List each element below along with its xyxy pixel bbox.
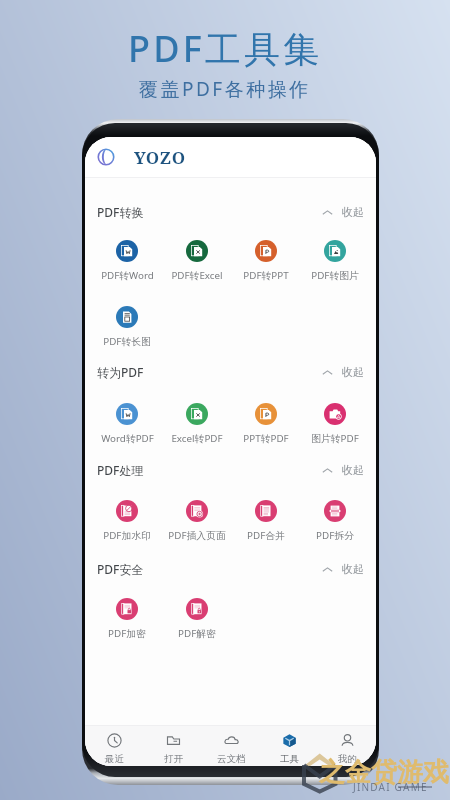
- button[interactable]: PDF转PPT: [231, 240, 300, 282]
- button[interactable]: Excel转PDF: [162, 403, 231, 445]
- button[interactable]: PDF拆分: [300, 500, 369, 542]
- staticText: PDF拆分: [316, 529, 354, 542]
- staticText: PDF解密: [178, 627, 216, 640]
- staticText: PDF插入页面: [168, 529, 226, 542]
- staticText: PDF转长图: [103, 335, 151, 348]
- button[interactable]: 收起: [320, 460, 366, 480]
- staticText: PDF转PPT: [243, 269, 289, 282]
- button[interactable]: PDF加水印: [92, 500, 162, 542]
- button[interactable]: PDF转长图: [92, 306, 162, 348]
- staticText: Excel转PDF: [171, 432, 223, 445]
- button[interactable]: PDF插入页面: [162, 500, 231, 542]
- staticText: 最近: [105, 753, 124, 765]
- staticText: PDF工具集: [128, 24, 323, 73]
- staticText: 图片转PDF: [311, 432, 359, 445]
- button[interactable]: 云文档: [202, 731, 260, 766]
- staticText: 收起: [342, 463, 364, 477]
- staticText: 云文档: [217, 753, 246, 765]
- staticText: 转为PDF: [97, 364, 144, 380]
- staticText: PDF转Excel: [171, 269, 223, 282]
- button[interactable]: PDF转图片: [300, 240, 369, 282]
- staticText: 收起: [342, 562, 364, 576]
- staticText: JINDAI GAME: [353, 780, 428, 794]
- button[interactable]: 收起: [320, 202, 366, 222]
- staticText: PDF转图片: [311, 269, 359, 282]
- button[interactable]: PDF转Word: [92, 240, 162, 282]
- button[interactable]: PDF合并: [231, 500, 300, 542]
- staticText: PDF处理: [97, 462, 144, 478]
- staticText: PDF转换: [97, 204, 144, 220]
- staticText: PPT转PDF: [243, 432, 289, 445]
- staticText: PDF转Word: [101, 269, 154, 282]
- staticText: 之金贷游戏: [319, 756, 449, 789]
- button[interactable]: PDF转Excel: [162, 240, 231, 282]
- button[interactable]: 最近: [85, 731, 144, 766]
- button[interactable]: 我的: [318, 731, 376, 766]
- button[interactable]: Word转PDF: [92, 403, 162, 445]
- staticText: PDF加密: [108, 627, 146, 640]
- button[interactable]: 收起: [320, 559, 366, 579]
- staticText: 收起: [342, 205, 364, 219]
- button[interactable]: 打开: [144, 731, 202, 766]
- staticText: PDF合并: [247, 529, 285, 542]
- staticText: Word转PDF: [101, 432, 154, 445]
- button[interactable]: 工具: [260, 731, 318, 766]
- staticText: 覆盖PDF各种操作: [139, 76, 311, 102]
- button[interactable]: PDF解密: [162, 598, 231, 640]
- button[interactable]: PPT转PDF: [231, 403, 300, 445]
- button[interactable]: 图片转PDF: [300, 403, 369, 445]
- staticText: YOZO: [134, 146, 186, 169]
- staticText: 收起: [342, 365, 364, 379]
- staticText: PDF加水印: [103, 529, 151, 542]
- staticText: 打开: [164, 753, 183, 765]
- staticText: 工具: [280, 753, 299, 765]
- button[interactable]: PDF加密: [92, 598, 162, 640]
- staticText: 我的: [338, 753, 357, 765]
- button[interactable]: 收起: [320, 362, 366, 382]
- staticText: PDF安全: [97, 561, 144, 577]
